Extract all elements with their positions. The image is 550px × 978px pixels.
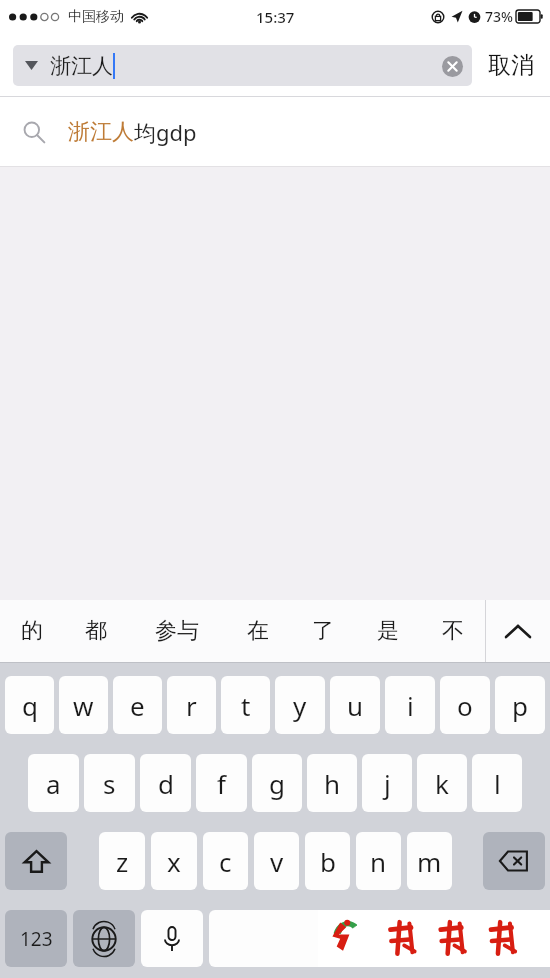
button[interactable]: 取消 (472, 42, 550, 88)
staticText: 浙江人 (50, 53, 113, 79)
button[interactable]: e (113, 676, 162, 734)
button[interactable]: Backspace (483, 832, 545, 890)
staticText: z (116, 844, 129, 879)
button[interactable]: 浙江人 (13, 45, 472, 86)
staticText: 参与 (155, 617, 199, 645)
staticText: 了 (312, 617, 334, 645)
button[interactable]: Expand candidates (486, 600, 550, 662)
button[interactable]: u (330, 676, 380, 734)
staticText: 浙江人 (68, 118, 134, 146)
button[interactable]: i (385, 676, 435, 734)
button[interactable]: 空格 (209, 910, 545, 967)
button[interactable]: g (252, 754, 302, 812)
button[interactable]: j (362, 754, 412, 812)
button[interactable]: 是 (355, 600, 420, 662)
staticText: 均gdp (134, 117, 197, 147)
button[interactable]: Clear (441, 55, 463, 77)
staticText: 空格 (358, 927, 396, 951)
staticText: 123 (20, 926, 53, 952)
staticText: x (167, 844, 181, 879)
button[interactable]: o (440, 676, 490, 734)
button[interactable]: r (167, 676, 216, 734)
button[interactable]: f (196, 754, 247, 812)
button[interactable]: Switch keyboard (73, 910, 135, 967)
button[interactable]: m (407, 832, 452, 890)
staticText: 不 (442, 617, 464, 645)
staticText: 是 (377, 617, 399, 645)
button[interactable]: 不 (420, 600, 485, 662)
staticText: f (217, 766, 226, 801)
button[interactable]: h (307, 754, 357, 812)
button[interactable]: q (5, 676, 54, 734)
button[interactable]: x (151, 832, 197, 890)
staticText: m (417, 844, 442, 879)
button[interactable]: d (140, 754, 191, 812)
staticText: 中国移动 (68, 8, 124, 26)
button[interactable]: 参与 (128, 600, 225, 662)
button[interactable]: 123 (5, 910, 67, 967)
staticText: k (435, 766, 449, 801)
button[interactable]: 都 (64, 600, 128, 662)
button[interactable]: z (99, 832, 145, 890)
staticText: g (269, 766, 285, 801)
staticText: y (293, 688, 307, 723)
staticText: w (73, 688, 94, 723)
staticText: t (241, 688, 251, 723)
button[interactable]: Shift (5, 832, 67, 890)
staticText: d (158, 766, 174, 801)
button[interactable]: t (221, 676, 270, 734)
staticText: l (494, 766, 501, 801)
button[interactable]: 浙江人 (0, 97, 550, 166)
staticText: p (512, 688, 528, 723)
button[interactable]: 的 (0, 600, 64, 662)
staticText: u (347, 688, 364, 723)
staticText: q (22, 688, 38, 723)
button[interactable]: s (84, 754, 135, 812)
staticText: v (270, 844, 284, 879)
button[interactable]: n (356, 832, 401, 890)
staticText: 15:37 (256, 7, 295, 27)
staticText: c (219, 844, 232, 879)
staticText: r (186, 688, 197, 723)
button[interactable]: l (472, 754, 522, 812)
button[interactable]: p (495, 676, 545, 734)
staticText: i (407, 688, 414, 723)
staticText: a (46, 766, 61, 801)
button[interactable]: 了 (290, 600, 355, 662)
button[interactable]: c (203, 832, 248, 890)
button[interactable]: 在 (225, 600, 290, 662)
button[interactable]: y (275, 676, 325, 734)
button[interactable]: b (305, 832, 350, 890)
staticText: 取消 (488, 51, 534, 80)
button[interactable]: v (254, 832, 299, 890)
staticText: o (457, 688, 473, 723)
staticText: s (103, 766, 116, 801)
staticText: 在 (247, 617, 269, 645)
button[interactable]: k (417, 754, 467, 812)
button[interactable]: w (59, 676, 108, 734)
staticText: 的 (21, 617, 43, 645)
button[interactable]: Voice input (141, 910, 203, 967)
staticText: 73% (485, 7, 513, 26)
button[interactable]: a (28, 754, 79, 812)
staticText: h (324, 766, 341, 801)
staticText: 都 (85, 617, 107, 645)
staticText: e (130, 688, 145, 723)
staticText: n (370, 844, 387, 879)
staticText: j (384, 766, 391, 801)
staticText: b (320, 844, 336, 879)
